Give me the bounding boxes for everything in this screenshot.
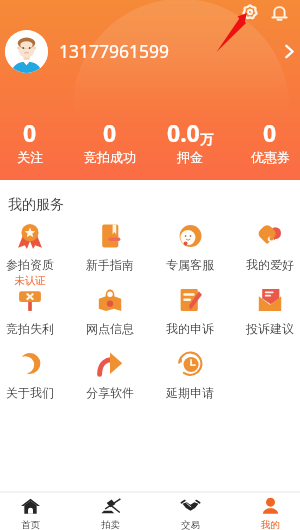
button[interactable]: 竞拍失利 [0,287,60,336]
staticText: 押金 [177,149,203,165]
staticText: 我的 [261,519,280,530]
staticText: 首页 [21,519,40,530]
button[interactable]: 专属客服 [160,223,220,272]
button[interactable]: Settings [238,0,262,24]
button[interactable]: 投诉建议 [240,287,300,336]
staticText: 参拍资质 [6,257,54,272]
button[interactable]: 拍卖 [80,493,140,530]
staticText: 延期申请 [166,385,214,400]
button[interactable]: 交易 [160,493,220,530]
button[interactable]: Notifications [267,0,291,24]
staticText: 0.0 [167,117,200,148]
staticText: 万 [200,131,213,147]
staticText: 0 [23,117,37,148]
staticText: 未认证 [14,274,46,287]
staticText: 关注 [17,149,43,165]
staticText: 新手指南 [86,257,134,272]
staticText: 0 [103,117,117,148]
staticText: 我的申诉 [166,321,214,336]
button[interactable]: 0.0 [160,117,220,165]
staticText: 我的服务 [8,196,64,214]
staticText: 竞拍成功 [84,149,136,165]
button[interactable]: 新手指南 [80,223,140,272]
button[interactable]: 我的 [240,493,300,530]
button[interactable]: 网点信息 [80,287,140,336]
button[interactable]: 13177961599 [5,24,294,78]
staticText: 竞拍失利 [6,321,54,336]
button[interactable]: 参拍资质 [0,223,60,287]
staticText: 13177961599 [59,39,170,63]
button[interactable]: 0 [80,117,140,165]
staticText: 我的爱好 [246,257,294,272]
staticText: 专属客服 [166,257,214,272]
button[interactable]: 关于我们 [0,351,60,400]
staticText: 关于我们 [6,385,54,400]
staticText: 优惠券 [251,149,290,165]
button[interactable]: 0 [0,117,60,165]
button[interactable]: 0 [240,117,300,165]
staticText: 投诉建议 [246,321,294,336]
button[interactable]: 首页 [0,493,60,530]
button[interactable]: 我的爱好 [240,223,300,272]
staticText: 分享软件 [86,385,134,400]
button[interactable]: 分享软件 [80,351,140,400]
staticText: 0 [263,117,277,148]
staticText: 网点信息 [86,321,134,336]
staticText: 拍卖 [101,519,120,530]
staticText: 交易 [181,519,200,530]
button[interactable]: 延期申请 [160,351,220,400]
button[interactable]: 我的申诉 [160,287,220,336]
